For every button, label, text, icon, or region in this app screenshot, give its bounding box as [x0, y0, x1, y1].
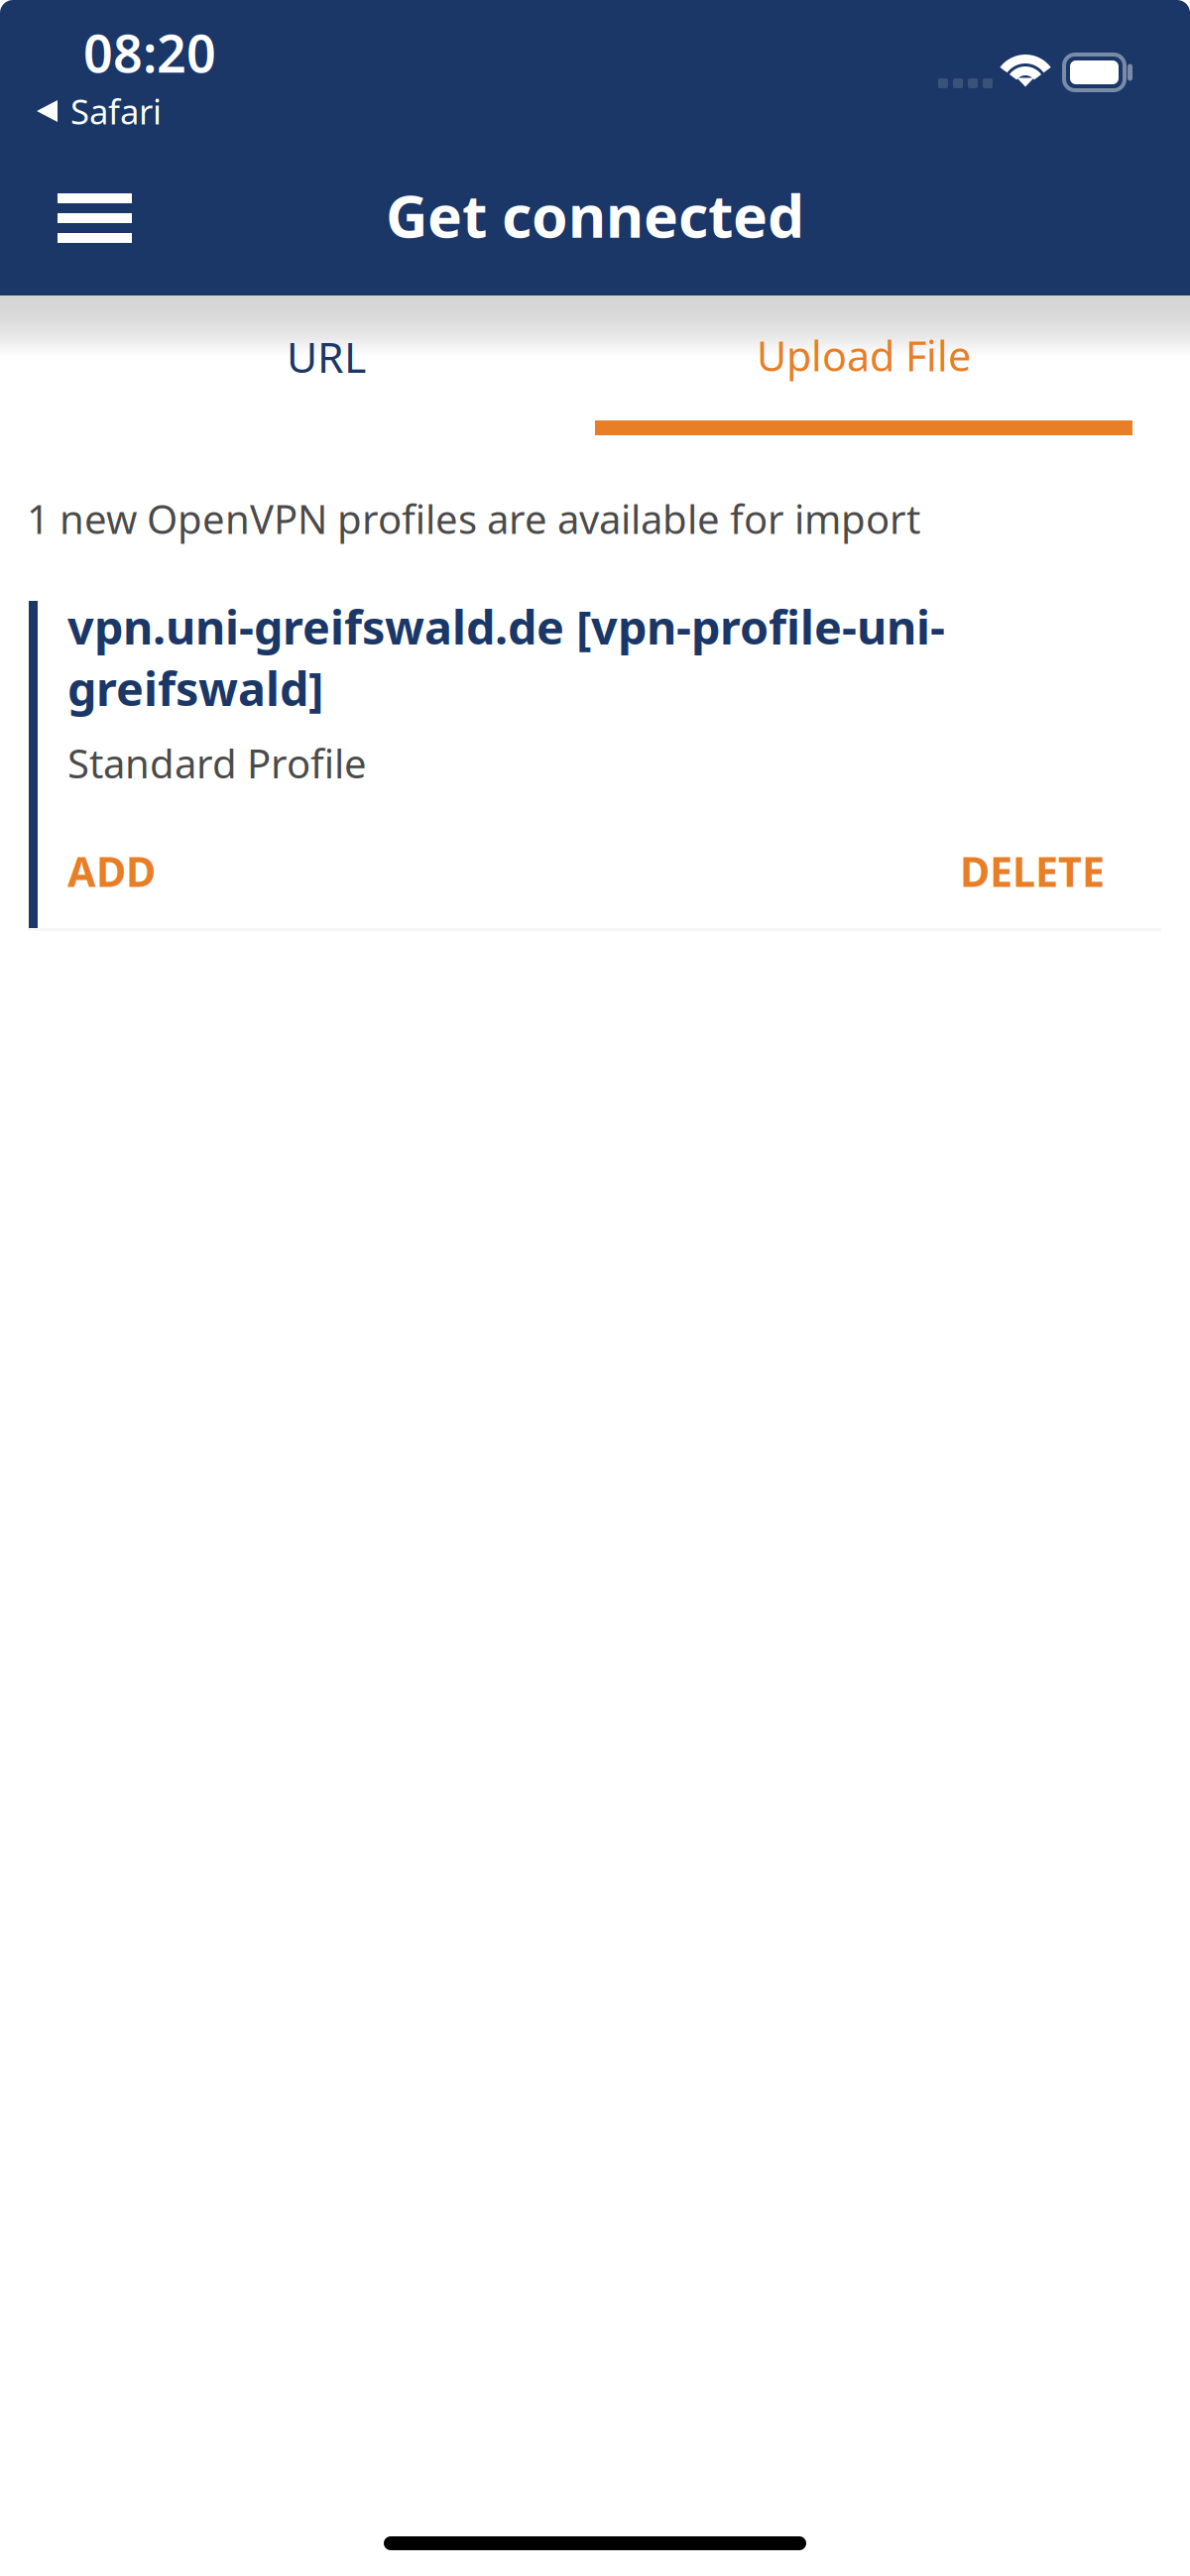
button[interactable]: DELETE — [960, 844, 1105, 898]
button[interactable]: Upload File — [595, 295, 1132, 454]
staticText: Upload File — [757, 328, 971, 383]
staticText: DELETE — [960, 844, 1105, 898]
staticText: ADD — [67, 844, 156, 898]
button[interactable]: Menu — [0, 149, 174, 288]
staticText: URL — [287, 328, 366, 384]
button[interactable]: URL — [58, 295, 595, 454]
staticText: Standard Profile — [67, 737, 367, 789]
staticText: 1 new OpenVPN profiles are available for… — [27, 492, 920, 545]
staticText: vpn.uni-greifswald.de [vpn-profile-uni-g… — [67, 596, 945, 719]
staticText: 08:20 — [83, 18, 216, 87]
staticText: Safari — [70, 88, 162, 134]
staticText: Get connected — [386, 176, 804, 254]
button[interactable]: ADD — [67, 844, 156, 898]
